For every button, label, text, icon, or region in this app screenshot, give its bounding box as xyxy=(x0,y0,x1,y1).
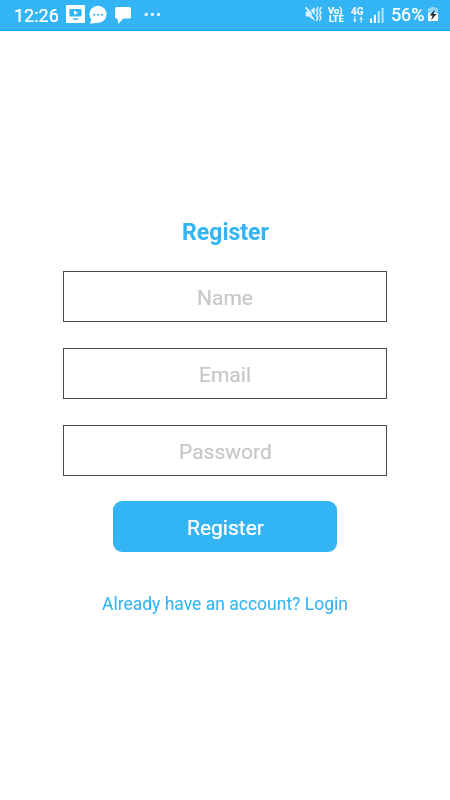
staticText: 12:26 xyxy=(14,5,59,26)
staticText: LTE xyxy=(329,14,344,25)
button[interactable]: Email xyxy=(63,348,387,399)
staticText: Register xyxy=(187,516,264,541)
button[interactable]: Password xyxy=(63,425,387,476)
button[interactable]: Name xyxy=(63,271,387,322)
staticText: Name xyxy=(197,286,253,311)
staticText: 56% xyxy=(391,4,425,25)
staticText: Vo) xyxy=(328,5,343,16)
button[interactable]: Already have an account? Login xyxy=(98,592,352,617)
staticText: Register xyxy=(182,219,269,246)
button[interactable]: Register xyxy=(113,501,337,552)
staticText: Password xyxy=(179,440,272,465)
staticText: Already have an account? Login xyxy=(102,594,348,615)
staticText: Email xyxy=(199,363,251,388)
staticText: 4G xyxy=(351,6,364,18)
